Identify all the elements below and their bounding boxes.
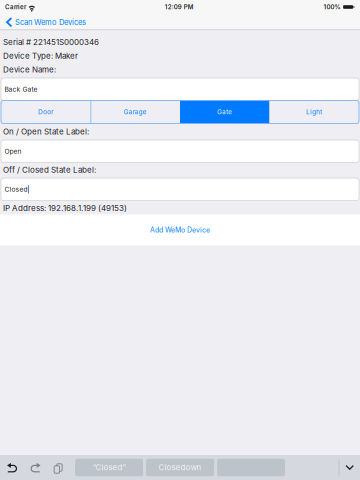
button[interactable]: Undo [7, 462, 18, 473]
staticText: Back Gate [4, 85, 37, 93]
staticText: Device Type: Maker [3, 51, 78, 61]
staticText: 12:09 PM [165, 3, 194, 11]
button[interactable]: Door [1, 100, 90, 123]
button[interactable]: Paste [53, 462, 61, 472]
button[interactable]: Gate [180, 100, 269, 123]
staticText: Serial # 221451S0000346 [3, 37, 99, 47]
button[interactable]: Closedown [146, 459, 214, 476]
staticText: Door [38, 108, 53, 116]
button[interactable]: Redo [30, 462, 41, 473]
staticText: Closedown [159, 463, 202, 472]
button[interactable]: “Closed” [75, 459, 143, 476]
staticText: Open [4, 147, 21, 155]
button[interactable]: Scan Wemo Devices [0, 14, 90, 30]
staticText: Scan Wemo Devices [15, 18, 86, 27]
staticText: Garage [124, 108, 147, 116]
button[interactable]: Light [269, 100, 359, 123]
staticText: Light [306, 108, 322, 116]
staticText: Device Name: [3, 65, 56, 74]
staticText: Off / Closed State Label: [3, 165, 96, 175]
staticText: Gate [217, 108, 232, 116]
staticText: Closed [4, 185, 27, 193]
staticText: “Closed” [93, 463, 126, 472]
button[interactable]: Add WeMo Device [0, 214, 360, 245]
button[interactable]: Hide keyboard [345, 465, 354, 470]
staticText: On / Open State Label: [3, 127, 89, 136]
button[interactable]: Garage [90, 100, 180, 123]
staticText: Carrier [5, 3, 26, 11]
staticText: 100% [323, 3, 340, 11]
staticText: Add WeMo Device [150, 226, 210, 234]
staticText: IP Address: 192.168.1.199 (49153) [3, 203, 127, 213]
